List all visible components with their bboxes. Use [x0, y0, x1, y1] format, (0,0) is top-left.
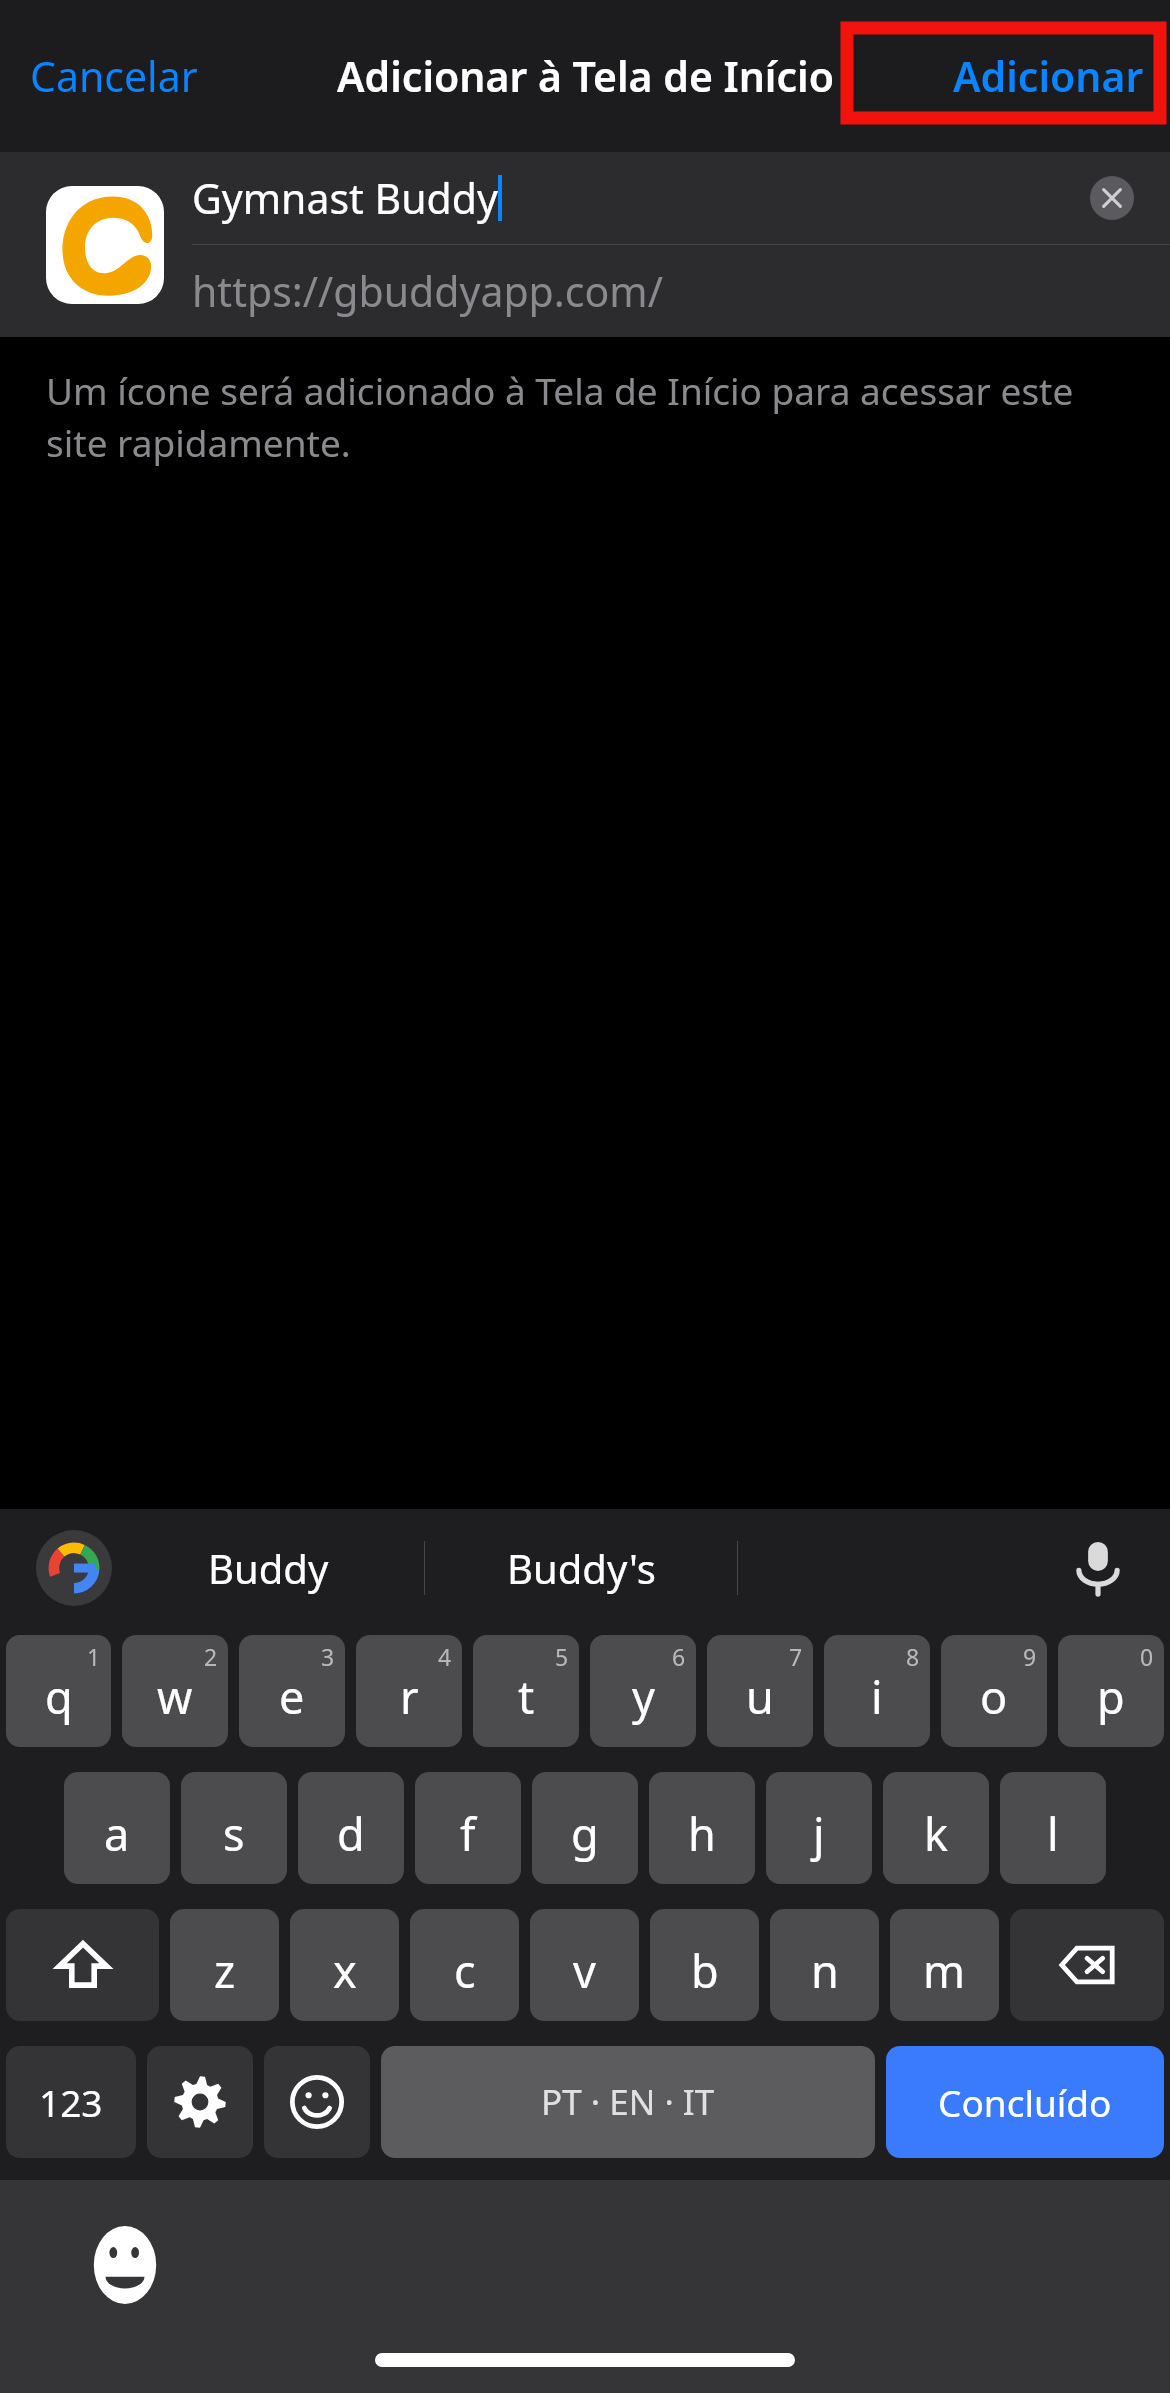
staticText: https://gbuddyapp.com/: [192, 263, 663, 319]
staticText: Concluído: [938, 2077, 1112, 2127]
staticText: d: [337, 1803, 365, 1864]
staticText: Buddy: [208, 1541, 329, 1595]
button[interactable]: s: [181, 1772, 287, 1884]
staticText: 5: [555, 1641, 569, 1672]
staticText: Um ícone será adicionado à Tela de Iníci…: [46, 365, 1090, 468]
button[interactable]: Buddy's: [425, 1509, 737, 1627]
button[interactable]: m: [890, 1909, 999, 2021]
staticText: Adicionar à Tela de Início: [337, 48, 834, 104]
staticText: l: [1047, 1803, 1059, 1864]
button[interactable]: v: [530, 1909, 639, 2021]
staticText: 4: [438, 1641, 452, 1672]
button[interactable]: Adicionar: [941, 36, 1156, 116]
button[interactable]: PT · EN · IT: [381, 2046, 875, 2158]
button[interactable]: Buddy: [112, 1509, 424, 1627]
button[interactable]: Emoji: [86, 2226, 164, 2304]
staticText: v: [573, 1940, 596, 2001]
staticText: j: [813, 1803, 825, 1864]
button[interactable]: Concluído: [886, 2046, 1164, 2158]
staticText: x: [333, 1940, 357, 2001]
staticText: s: [223, 1803, 245, 1864]
staticText: r: [400, 1666, 419, 1727]
button[interactable]: Google: [36, 1530, 112, 1606]
staticText: u: [746, 1666, 774, 1727]
button[interactable]: l: [1000, 1772, 1106, 1884]
staticText: g: [571, 1803, 599, 1864]
button[interactable]: 3: [239, 1635, 345, 1747]
button[interactable]: Apagar texto: [1090, 176, 1134, 220]
button[interactable]: 0: [1058, 1635, 1164, 1747]
staticText: e: [279, 1666, 305, 1727]
staticText: h: [688, 1803, 716, 1864]
button[interactable]: h: [649, 1772, 755, 1884]
staticText: z: [214, 1940, 236, 2001]
button[interactable]: 9: [941, 1635, 1047, 1747]
staticText: c: [454, 1940, 476, 2001]
staticText: k: [924, 1803, 949, 1864]
staticText: q: [45, 1666, 73, 1727]
staticText: 7: [789, 1641, 803, 1672]
button[interactable]: d: [298, 1772, 404, 1884]
staticText: PT · EN · IT: [541, 2078, 715, 2126]
button[interactable]: Cancelar: [18, 36, 210, 116]
button[interactable]: 5: [473, 1635, 579, 1747]
button[interactable]: 1: [6, 1635, 111, 1747]
staticText: 0: [1140, 1641, 1154, 1672]
button[interactable]: 6: [590, 1635, 696, 1747]
button[interactable]: Emoji: [264, 2046, 370, 2158]
button[interactable]: Configurações: [147, 2046, 253, 2158]
staticText: w: [157, 1666, 193, 1727]
staticText: t: [518, 1666, 535, 1727]
staticText: Gymnast Buddy: [192, 170, 498, 226]
button[interactable]: k: [883, 1772, 989, 1884]
staticText: f: [460, 1803, 476, 1864]
staticText: o: [980, 1666, 1008, 1727]
staticText: Adicionar: [953, 48, 1144, 104]
button[interactable]: x: [290, 1909, 399, 2021]
staticText: 2: [204, 1641, 218, 1672]
staticText: b: [691, 1940, 719, 2001]
staticText: 9: [1023, 1641, 1037, 1672]
staticText: m: [923, 1940, 966, 2001]
staticText: a: [104, 1803, 130, 1864]
button[interactable]: f: [415, 1772, 521, 1884]
button[interactable]: Ditado por voz: [1050, 1520, 1146, 1616]
button[interactable]: 123: [6, 2046, 136, 2158]
button[interactable]: 8: [824, 1635, 930, 1747]
staticText: 8: [906, 1641, 920, 1672]
staticText: 3: [321, 1641, 335, 1672]
button[interactable]: 7: [707, 1635, 813, 1747]
button[interactable]: j: [766, 1772, 872, 1884]
button[interactable]: n: [770, 1909, 879, 2021]
button[interactable]: Shift: [6, 1909, 159, 2021]
staticText: Buddy's: [507, 1541, 656, 1595]
staticText: 123: [39, 2077, 103, 2127]
staticText: n: [811, 1940, 839, 2001]
staticText: y: [632, 1666, 655, 1727]
staticText: Cancelar: [30, 48, 198, 104]
button[interactable]: c: [410, 1909, 519, 2021]
staticText: 1: [87, 1641, 101, 1672]
button[interactable]: g: [532, 1772, 638, 1884]
button[interactable]: a: [64, 1772, 170, 1884]
button[interactable]: 4: [356, 1635, 462, 1747]
button[interactable]: Apagar: [1010, 1909, 1164, 2021]
staticText: i: [871, 1666, 883, 1727]
button[interactable]: b: [650, 1909, 759, 2021]
staticText: 6: [672, 1641, 686, 1672]
button[interactable]: 2: [122, 1635, 228, 1747]
button[interactable]: z: [170, 1909, 279, 2021]
staticText: p: [1097, 1666, 1125, 1727]
